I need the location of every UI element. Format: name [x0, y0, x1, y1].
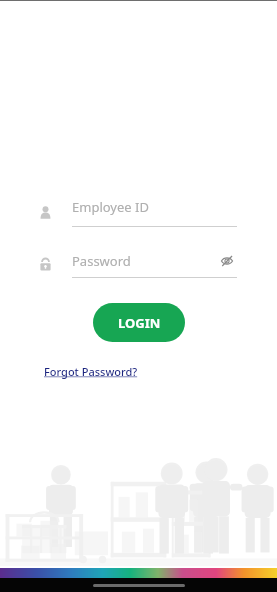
staticText: Password — [72, 252, 217, 270]
staticText: Employee ID — [72, 198, 149, 216]
button[interactable]: Employee ID — [38, 198, 237, 227]
button[interactable]: Show password — [217, 251, 237, 271]
button[interactable]: Forgot Password? — [44, 364, 138, 379]
button[interactable]: Password — [38, 251, 237, 278]
staticText: LOGIN — [118, 314, 161, 332]
button[interactable]: LOGIN — [93, 303, 185, 342]
staticText: Forgot Password? — [44, 364, 138, 379]
